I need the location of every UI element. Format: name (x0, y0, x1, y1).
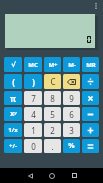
staticText: 1 (31, 125, 36, 136)
staticText: 3 (69, 125, 74, 136)
staticText: 6 (69, 109, 74, 120)
button[interactable]: Home (41, 168, 63, 183)
staticText: +/- (9, 142, 17, 150)
staticText: C (50, 76, 56, 87)
staticText: 0 (31, 141, 36, 152)
staticText: xʸ (10, 109, 17, 119)
button[interactable]: +/- (4, 139, 22, 153)
staticText: . (51, 141, 54, 152)
button[interactable]: Recent apps (63, 168, 85, 183)
button[interactable]: Minus (82, 107, 99, 121)
button[interactable]: 1/x (4, 123, 22, 137)
button[interactable]: ) (24, 74, 42, 89)
button[interactable]: √ (4, 57, 22, 72)
button[interactable]: 3 (63, 123, 80, 137)
button[interactable]: MR (82, 57, 99, 72)
button[interactable]: Plus (82, 123, 99, 137)
button[interactable]: π (4, 91, 22, 105)
staticText: ) (32, 76, 35, 87)
button[interactable]: 6 (63, 107, 80, 121)
button[interactable]: C (44, 74, 61, 89)
button[interactable]: 5 (44, 107, 61, 121)
staticText: 7 (31, 93, 36, 104)
staticText: √ (11, 61, 16, 69)
staticText: 1/x (8, 126, 18, 134)
staticText: MR (86, 61, 96, 69)
button[interactable]: 7 (24, 91, 42, 105)
staticText: π (10, 93, 16, 104)
staticText: M- (68, 61, 76, 69)
staticText: 8 (50, 93, 55, 104)
staticText: 5 (50, 109, 55, 120)
button[interactable]: 1 (24, 123, 42, 137)
staticText: 4 (31, 109, 36, 120)
staticText: 2 (50, 125, 55, 136)
button[interactable]: Equals (82, 139, 99, 153)
staticText: ( (12, 76, 15, 87)
button[interactable]: Divide (82, 74, 99, 89)
button[interactable]: 9 (63, 91, 80, 105)
button[interactable]: Multiply (82, 91, 99, 105)
staticText: % (68, 141, 75, 151)
button[interactable]: More options (89, 0, 102, 12)
button[interactable]: 4 (24, 107, 42, 121)
staticText: M+ (48, 61, 58, 69)
button[interactable]: MC (24, 57, 42, 72)
button[interactable]: Back (19, 168, 41, 183)
button[interactable]: . (44, 139, 61, 153)
button[interactable]: Backspace (63, 74, 80, 89)
button[interactable]: xʸ (4, 107, 22, 121)
button[interactable]: % (63, 139, 80, 153)
button[interactable]: 2 (44, 123, 61, 137)
button[interactable]: ( (4, 74, 22, 89)
button[interactable]: 0 (24, 139, 42, 153)
button[interactable]: M+ (44, 57, 61, 72)
staticText: MC (28, 61, 38, 69)
button[interactable]: M- (63, 57, 80, 72)
button[interactable]: 8 (44, 91, 61, 105)
staticText: 9 (69, 93, 74, 104)
